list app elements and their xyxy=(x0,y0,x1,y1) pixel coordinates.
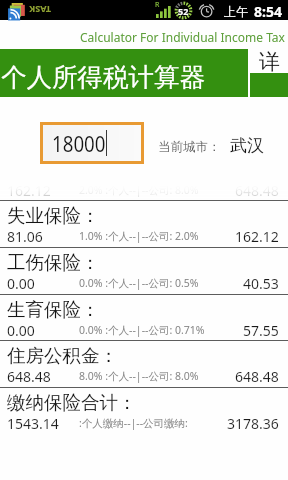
staticText: R xyxy=(155,0,160,10)
staticText: 1.0% :个人--|--公司: 2.0% xyxy=(79,229,199,243)
button[interactable]: 工伤保险： xyxy=(0,247,288,294)
staticText: 18000 xyxy=(52,128,106,158)
button[interactable]: 失业保险： xyxy=(0,200,288,247)
staticText: 工伤保险： xyxy=(7,251,100,274)
staticText: 40.53 xyxy=(243,274,279,293)
staticText: 个人所得税计算器 xyxy=(1,61,205,93)
staticText: 1543.14 xyxy=(7,414,59,433)
staticText: 0.00 xyxy=(7,274,35,293)
staticText: 81.06 xyxy=(7,227,43,246)
staticText: 缴纳保险合计： xyxy=(7,391,137,414)
staticText: 2.0% :个人--|--公司: 8.0% xyxy=(79,183,199,197)
staticText: 162.12 xyxy=(235,227,279,246)
staticText: 648.48 xyxy=(235,367,279,386)
staticText: 0.0% :个人--|--公司: 0.5% xyxy=(79,276,199,290)
staticText: 详 xyxy=(259,49,280,75)
staticText: Calculator For Individual Income Tax xyxy=(80,29,285,45)
staticText: 52 xyxy=(178,5,189,17)
staticText: 失业保险： xyxy=(7,204,100,227)
staticText: 162.12 xyxy=(7,181,51,200)
staticText: 生育保险： xyxy=(7,298,100,321)
button[interactable]: 养老保险： xyxy=(0,168,288,201)
staticText: 8:54 xyxy=(254,2,282,21)
staticText: 8.0% :个人--|--公司: 8.0% xyxy=(79,369,199,383)
staticText: 648.48 xyxy=(235,181,279,200)
staticText: 648.48 xyxy=(7,367,51,386)
button[interactable]: 18000 xyxy=(43,125,141,161)
staticText: :个人缴纳--|--公司缴纳: xyxy=(79,416,188,430)
button[interactable]: 缴纳保险合计： xyxy=(0,387,288,434)
staticText: 0.00 xyxy=(7,321,35,340)
staticText: 0.0% :个人--|--公司: 0.71% xyxy=(79,323,205,337)
staticText: 上午 xyxy=(224,4,248,19)
staticText: 57.55 xyxy=(243,321,279,340)
button[interactable]: 个人所得税计算器 xyxy=(0,49,248,97)
staticText: 武汉 xyxy=(230,135,264,156)
staticText: 3178.36 xyxy=(227,414,279,433)
button[interactable]: 住房公积金： xyxy=(0,340,288,387)
staticText: TASK xyxy=(29,4,51,16)
staticText: 当前城市： xyxy=(158,139,221,155)
staticText: 住房公积金： xyxy=(7,344,118,367)
button[interactable]: 生育保险： xyxy=(0,294,288,341)
